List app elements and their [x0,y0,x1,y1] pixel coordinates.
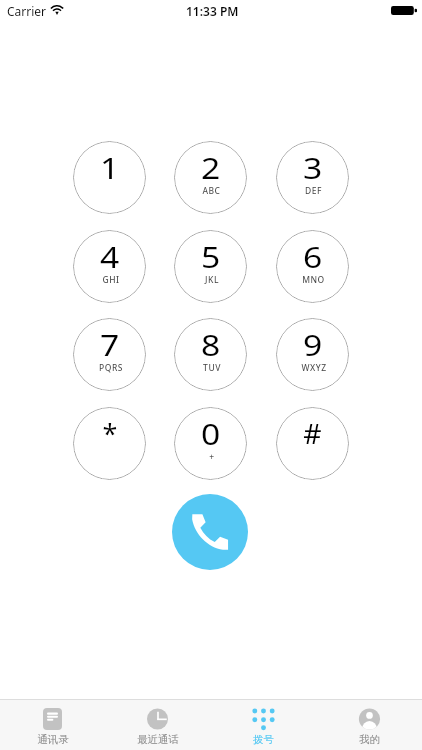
staticText: Carrier [7,3,47,19]
staticText: WXYZ [301,362,327,374]
staticText: PQRS [99,362,123,374]
staticText: TUV [203,362,221,374]
staticText: ABC [202,185,221,197]
staticText: 9 [303,325,322,364]
staticText: 1 [100,148,119,187]
staticText: JKL [205,274,219,286]
button[interactable]: 拨号 [210,699,316,750]
button[interactable]: 9 [276,318,349,391]
staticText: DEF [305,185,322,197]
button[interactable]: * [73,407,146,480]
button[interactable]: 6 [276,230,349,303]
button[interactable]: 0 [174,407,247,480]
staticText: 7 [100,325,119,364]
staticText: MNO [302,274,325,286]
button[interactable]: 我的 [316,699,422,750]
button[interactable]: 2 [174,141,247,214]
staticText: 3 [303,148,322,187]
button[interactable]: 4 [73,230,146,303]
staticText: 4 [100,237,119,276]
staticText: 2 [201,148,220,187]
staticText: + [209,451,215,463]
other: Wi-Fi [48,3,66,17]
button[interactable]: 5 [174,230,247,303]
button[interactable]: 7 [73,318,146,391]
staticText: 最近通话 [137,733,179,746]
staticText: * [103,415,117,452]
staticText: 拨号 [253,733,274,746]
staticText: 6 [303,237,322,276]
staticText: GHI [102,274,120,286]
staticText: 0 [201,414,220,453]
button[interactable]: 最近通话 [105,699,210,750]
staticText: 我的 [359,733,380,746]
other: Battery [391,6,417,15]
staticText: # [303,415,322,452]
button[interactable]: 8 [174,318,247,391]
button[interactable]: 1 [73,141,146,214]
button[interactable]: 通讯录 [0,699,105,750]
staticText: 通讯录 [37,733,69,746]
button[interactable]: # [276,407,349,480]
staticText: 8 [201,325,220,364]
button[interactable]: Call [172,494,248,570]
button[interactable]: 3 [276,141,349,214]
staticText: 5 [201,237,220,276]
staticText: 11:33 PM [186,3,239,19]
